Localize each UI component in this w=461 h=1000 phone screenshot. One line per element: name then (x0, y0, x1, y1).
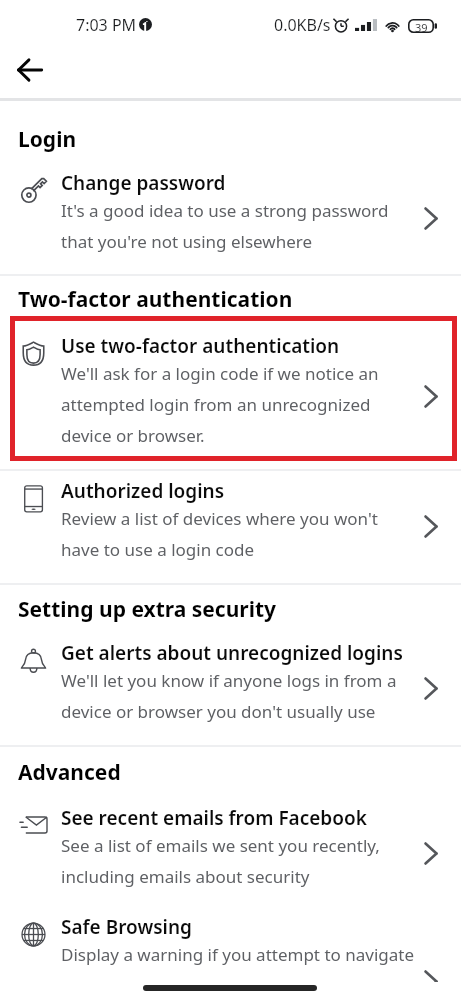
staticText: Display a warning if you attempt to navi… (61, 937, 415, 968)
button[interactable]: Get alerts about unrecognized logins (414, 671, 448, 705)
staticText: Safe Browsing (61, 914, 415, 940)
button[interactable]: Change password (414, 201, 448, 235)
button[interactable] (0, 160, 461, 274)
button[interactable]: Safe Browsing (414, 964, 448, 998)
staticText: We'll let you know if anyone logs in fro… (61, 663, 415, 725)
staticText: Advanced (18, 758, 121, 787)
staticText: Authorized logins (61, 478, 415, 504)
button[interactable]: See recent emails from Facebook (414, 836, 448, 870)
staticText: See a list of emails we sent you recentl… (61, 828, 415, 890)
staticText: Two-factor authentication (18, 285, 293, 314)
staticText: Get alerts about unrecognized logins (61, 640, 415, 666)
staticText: Review a list of devices where you won't… (61, 501, 415, 563)
button[interactable]: Back (6, 46, 54, 94)
staticText: It's a good idea to use a strong passwor… (61, 193, 415, 255)
staticText: 0.0KB/s (274, 14, 331, 36)
button[interactable]: Authorized logins (414, 509, 448, 543)
staticText: Use two-factor authentication (61, 333, 415, 359)
staticText: Login (18, 125, 77, 154)
button[interactable] (0, 795, 461, 900)
button[interactable] (0, 630, 461, 745)
button[interactable] (0, 900, 461, 1000)
staticText: Change password (61, 170, 415, 196)
staticText: 7:03 PM (76, 14, 137, 36)
button[interactable] (0, 470, 461, 583)
staticText: We'll ask for a login code if we notice … (61, 356, 415, 449)
button[interactable] (0, 322, 461, 469)
staticText: Setting up extra security (18, 595, 277, 624)
button[interactable]: Use two-factor authentication (414, 379, 448, 413)
staticText: 39 (415, 20, 428, 34)
staticText: See recent emails from Facebook (61, 805, 415, 831)
